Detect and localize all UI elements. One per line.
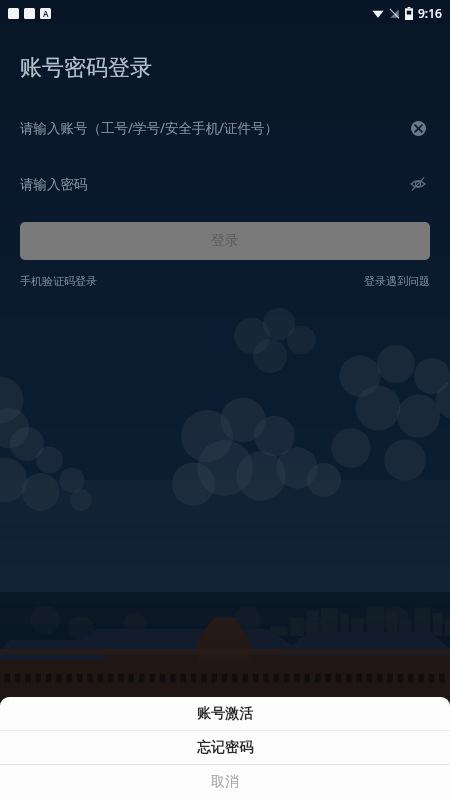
staticText: 账号密码登录 <box>20 54 152 82</box>
button[interactable]: 登录遇到问题 <box>364 270 430 292</box>
staticText: 登录遇到问题 <box>364 274 430 288</box>
staticText: 取消 <box>211 773 239 791</box>
button[interactable]: 请输入密码 <box>0 164 450 204</box>
button[interactable]: 请输入账号（工号/学号/安全手机/证件号） <box>0 108 450 148</box>
button[interactable]: Clear account <box>406 116 430 140</box>
staticText: 请输入账号（工号/学号/安全手机/证件号） <box>20 119 279 137</box>
button[interactable]: Show password <box>406 172 430 196</box>
button[interactable]: 手机验证码登录 <box>20 270 97 292</box>
button[interactable]: 账号激活 <box>0 697 450 730</box>
staticText: 账号激活 <box>197 705 253 723</box>
button[interactable]: 取消 <box>0 765 450 798</box>
button[interactable]: 登录 <box>20 222 430 260</box>
staticText: 请输入密码 <box>20 176 88 193</box>
staticText: 忘记密码 <box>197 739 253 757</box>
staticText: 手机验证码登录 <box>20 274 97 288</box>
button[interactable]: 忘记密码 <box>0 731 450 764</box>
staticText: A <box>43 8 49 19</box>
staticText: 登录 <box>211 232 239 250</box>
staticText: 9:16 <box>418 5 442 21</box>
